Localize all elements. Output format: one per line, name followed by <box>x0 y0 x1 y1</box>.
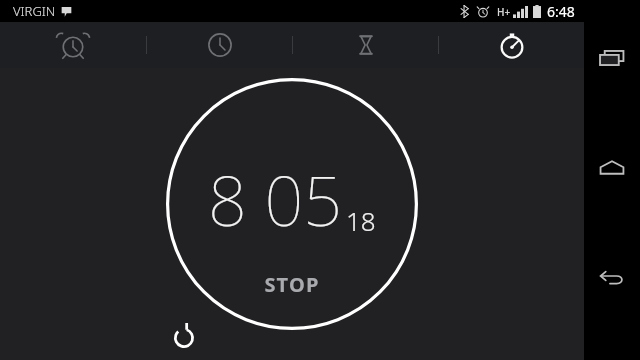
button[interactable]: Tab <box>147 22 292 68</box>
staticText: 6:48 <box>547 2 575 21</box>
button[interactable]: Stop stopwatch <box>166 78 418 330</box>
staticText: STOP <box>264 271 320 298</box>
staticText: 18 <box>346 203 376 238</box>
other: Stopwatch <box>497 30 527 60</box>
button[interactable]: Home <box>588 144 636 192</box>
other: Alarm <box>58 30 88 60</box>
staticText: 8 05 <box>208 153 342 246</box>
other: Timer <box>351 30 381 60</box>
button[interactable]: Tab <box>293 22 438 68</box>
button[interactable]: Recent apps <box>588 34 636 82</box>
staticText: VIRGIN <box>13 2 56 20</box>
button[interactable]: Back <box>588 254 636 302</box>
button[interactable]: Reset <box>165 318 203 356</box>
staticText: H+ <box>497 5 511 19</box>
button[interactable]: Tab <box>0 22 146 68</box>
button[interactable]: Tab <box>439 22 584 68</box>
other: Clock <box>205 30 235 60</box>
